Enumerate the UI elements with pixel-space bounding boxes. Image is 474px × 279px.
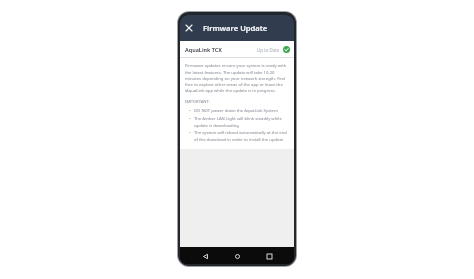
button[interactable]: AquaLink TCX [180,41,294,57]
button[interactable]: Home [230,249,244,263]
staticText: • [189,130,191,136]
staticText: The system will reboot automatically at … [194,130,289,142]
staticText: DO NOT power down the AquaLink System [194,108,289,114]
button[interactable]: Recent apps [262,249,276,263]
staticText: Firmware Update [203,23,268,33]
button[interactable]: Back [198,249,212,263]
staticText: • [189,116,191,122]
staticText: AquaLink TCX [185,46,222,53]
staticText: IMPORTANT: [185,99,210,105]
staticText: Firmware updates ensure your system is r… [185,63,289,93]
staticText: The Amber LAN Light will blink steadily … [194,116,289,128]
staticText: • [189,108,191,114]
staticText: Up to Date [257,47,280,53]
button[interactable]: Close [182,21,196,35]
